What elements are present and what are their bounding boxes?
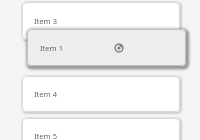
button[interactable]: Item 3	[22, 2, 180, 40]
button[interactable]: Item 4	[22, 76, 180, 112]
staticText: Item 5	[34, 131, 58, 140]
staticText: Item 3	[34, 16, 58, 26]
staticText: Item 4	[34, 89, 58, 99]
button[interactable]: Item 1	[27, 29, 186, 66]
button[interactable]: Reorder handle	[113, 42, 125, 54]
staticText: Item 1	[40, 43, 64, 53]
button[interactable]: Item 5	[22, 118, 180, 140]
